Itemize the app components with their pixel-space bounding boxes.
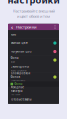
- staticText: Ненужный цвет: [10, 50, 31, 53]
- button[interactable]: Блокировкой Фонов: [8, 73, 59, 81]
- staticText: ‹: [11, 23, 13, 31]
- button[interactable]: Схема сервиса: [8, 64, 59, 73]
- button[interactable]: Фоны: [8, 56, 59, 64]
- button[interactable]: Ещё: [52, 24, 58, 30]
- button[interactable]: Тема: [8, 30, 59, 39]
- button[interactable]: Тёмный цвет: [8, 39, 59, 47]
- staticText: Блокировкой Фонов: [10, 71, 30, 79]
- staticText: Схема сервиса: [10, 65, 28, 68]
- staticText: Отключено: [10, 79, 25, 82]
- staticText: Тёмный цвет: [10, 41, 27, 45]
- staticText: Все: [10, 60, 14, 64]
- staticText: и цвет обоев и тем: [17, 13, 50, 19]
- staticText: Фоны: [14, 82, 22, 86]
- staticText: Тема: [10, 33, 15, 36]
- staticText: По сети: [10, 93, 20, 96]
- staticText: Богатые настройки: [7, 0, 59, 6]
- button[interactable]: Ненужный цвет: [8, 47, 59, 56]
- staticText: Настраивайте внешний: [12, 8, 54, 13]
- staticText: Фоны: [10, 56, 18, 60]
- staticText: Исходные палитры: [10, 85, 23, 93]
- button[interactable]: Готовые бэкапы: [8, 95, 59, 104]
- staticText: Готовые бэкапы: [10, 98, 31, 101]
- button[interactable]: Исходные палитры: [8, 87, 59, 95]
- staticText: Настройки: [16, 24, 37, 30]
- button[interactable]: Назад: [9, 24, 15, 30]
- staticText: Авто режим: [10, 69, 26, 72]
